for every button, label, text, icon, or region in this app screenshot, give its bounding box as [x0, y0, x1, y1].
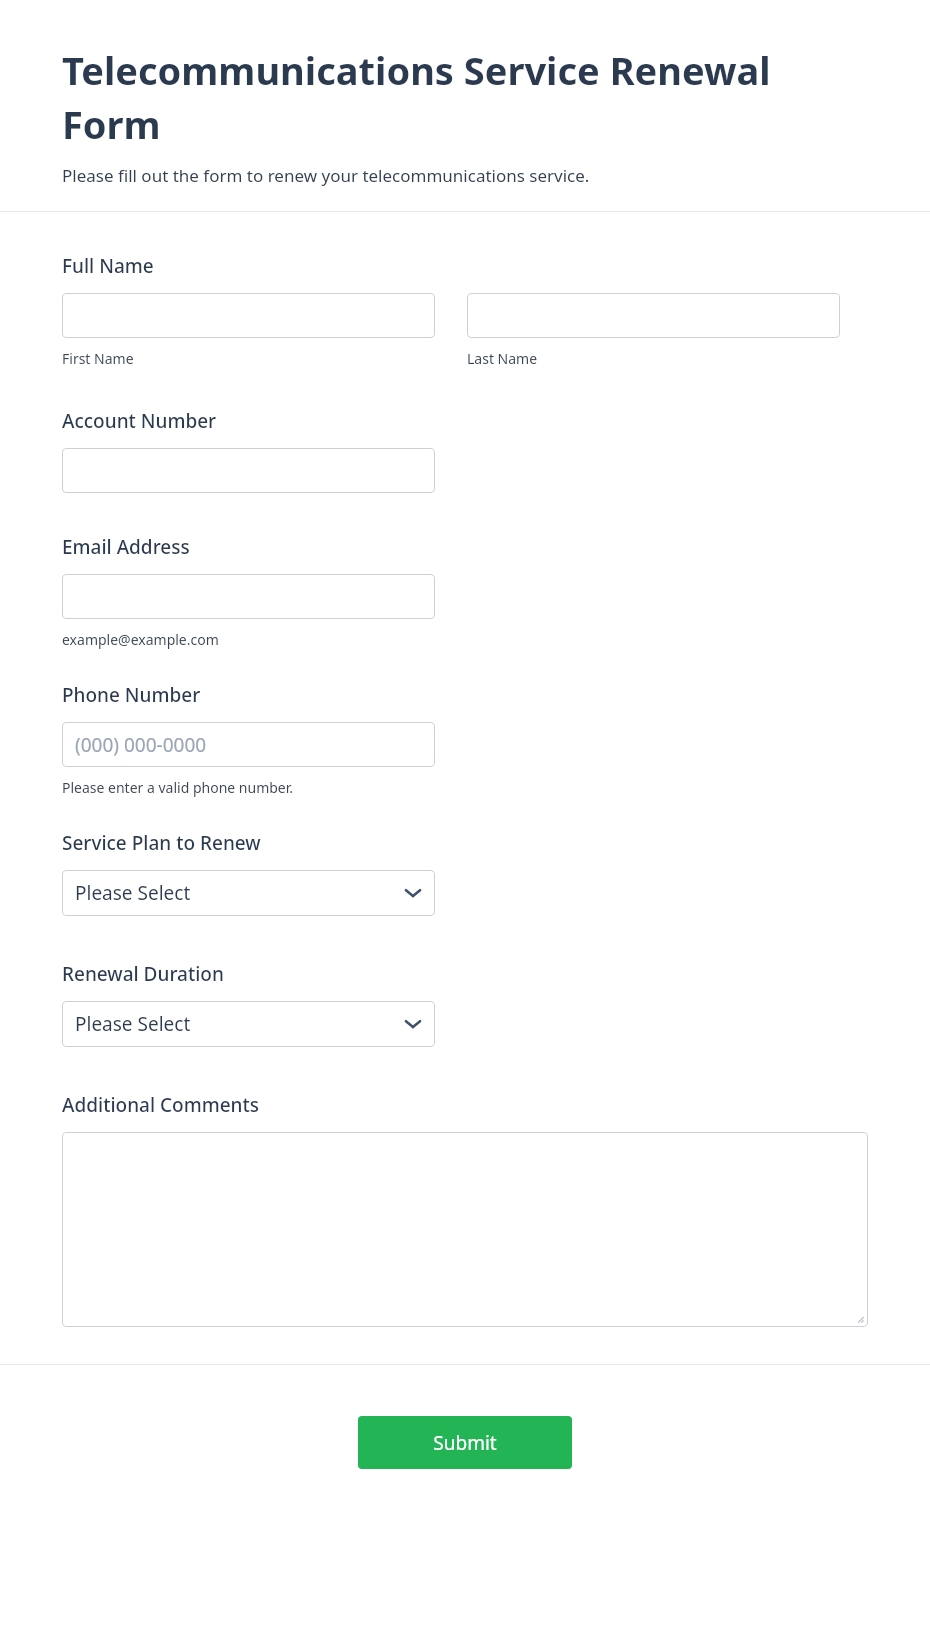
- staticText: Account Number: [62, 408, 217, 434]
- button[interactable]: Additional comments text area: [62, 1132, 868, 1327]
- button[interactable]: [62, 574, 435, 619]
- staticText: Email Address: [62, 534, 190, 560]
- staticText: Phone Number: [62, 682, 201, 708]
- button[interactable]: Please Select dropdown: [62, 870, 435, 916]
- staticText: (000) 000-0000: [75, 732, 207, 758]
- staticText: Please enter a valid phone number.: [62, 778, 294, 797]
- staticText: Telecommunications Service Renewal Form: [62, 44, 868, 150]
- staticText: Additional Comments: [62, 1092, 259, 1118]
- staticText: First Name: [62, 349, 134, 368]
- button[interactable]: Submit: [358, 1416, 572, 1469]
- staticText: Please fill out the form to renew your t…: [62, 164, 590, 187]
- staticText: example@example.com: [62, 630, 219, 649]
- button[interactable]: Please Select dropdown: [62, 1001, 435, 1047]
- staticText: Full Name: [62, 253, 154, 279]
- staticText: Renewal Duration: [62, 961, 224, 987]
- staticText: Please Select: [75, 880, 405, 906]
- button[interactable]: (000) 000-0000: [62, 722, 435, 767]
- staticText: Service Plan to Renew: [62, 830, 261, 856]
- button[interactable]: [62, 293, 435, 338]
- staticText: Submit: [433, 1430, 497, 1456]
- staticText: Please Select: [75, 1011, 405, 1037]
- button[interactable]: [62, 448, 435, 493]
- staticText: Last Name: [467, 349, 538, 368]
- button[interactable]: [467, 293, 840, 338]
